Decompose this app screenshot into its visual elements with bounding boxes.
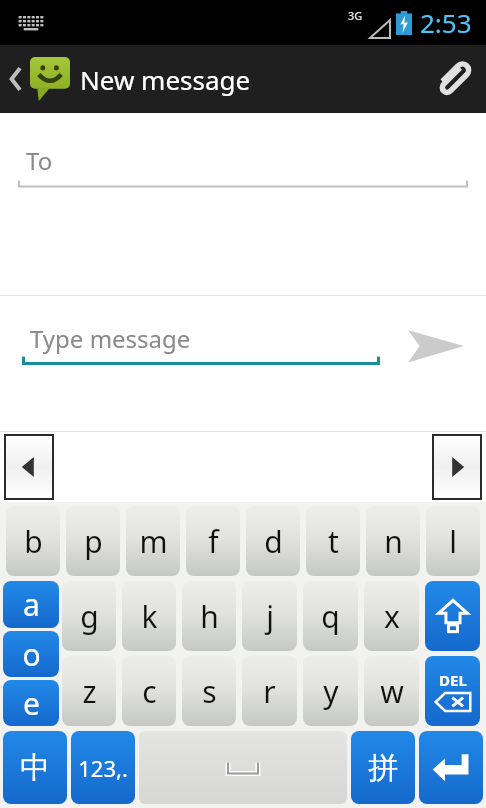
button[interactable]: w xyxy=(364,656,419,726)
button[interactable]: 123,. xyxy=(71,731,135,804)
staticText: m xyxy=(139,521,168,562)
staticText: b xyxy=(24,521,43,562)
staticText: 中 xyxy=(20,749,50,787)
button[interactable]: c xyxy=(122,656,176,726)
button[interactable]: 中 xyxy=(3,731,67,804)
staticText: o xyxy=(22,634,41,675)
staticText: y xyxy=(323,671,339,712)
button[interactable]: x xyxy=(364,581,419,651)
button[interactable]: Delete xyxy=(425,656,480,726)
staticText: g xyxy=(80,596,99,637)
staticText: w xyxy=(380,671,404,712)
button[interactable]: b xyxy=(6,506,60,576)
button[interactable]: z xyxy=(62,656,116,726)
staticText: n xyxy=(384,521,403,562)
button[interactable]: To xyxy=(18,137,468,183)
staticText: z xyxy=(82,671,97,712)
button[interactable]: f xyxy=(186,506,240,576)
button[interactable]: s xyxy=(182,656,236,726)
button[interactable]: Shift xyxy=(425,581,480,651)
staticText: l xyxy=(449,521,457,562)
staticText: c xyxy=(142,671,157,712)
staticText: e xyxy=(23,683,40,724)
staticText: New message xyxy=(80,62,251,97)
button[interactable]: q xyxy=(303,581,358,651)
staticText: x xyxy=(384,596,400,637)
button[interactable]: y xyxy=(303,656,358,726)
button[interactable]: Enter xyxy=(419,731,483,804)
staticText: k xyxy=(141,596,158,637)
staticText: t xyxy=(328,521,339,562)
staticText: r xyxy=(263,671,276,712)
button[interactable]: l xyxy=(426,506,480,576)
button[interactable]: n xyxy=(366,506,420,576)
staticText: 123,. xyxy=(78,753,128,783)
staticText: 3G xyxy=(348,8,363,23)
staticText: f xyxy=(208,521,219,562)
button[interactable]: Next candidates xyxy=(434,436,480,498)
button[interactable]: Type message xyxy=(22,316,386,360)
staticText: 2:53 xyxy=(420,5,472,40)
button[interactable]: 拼 xyxy=(351,731,415,804)
staticText: Type message xyxy=(30,322,191,355)
staticText: 拼 xyxy=(368,749,398,787)
button[interactable]: Space xyxy=(139,731,347,804)
button[interactable]: o xyxy=(3,631,59,677)
staticText: DEL xyxy=(439,670,467,690)
button[interactable]: p xyxy=(66,506,120,576)
button[interactable]: r xyxy=(242,656,297,726)
button[interactable]: k xyxy=(122,581,176,651)
button[interactable]: Attach xyxy=(418,45,486,113)
staticText: j xyxy=(266,596,274,637)
button[interactable]: t xyxy=(306,506,360,576)
staticText: a xyxy=(23,584,40,625)
staticText: d xyxy=(264,521,283,562)
button[interactable]: Previous candidates xyxy=(6,436,52,498)
button[interactable]: e xyxy=(3,680,59,726)
button[interactable]: j xyxy=(242,581,297,651)
staticText: p xyxy=(84,521,103,562)
button[interactable]: h xyxy=(182,581,236,651)
button[interactable]: g xyxy=(62,581,116,651)
staticText: h xyxy=(200,596,219,637)
button[interactable]: a xyxy=(3,581,59,628)
button[interactable]: d xyxy=(246,506,300,576)
staticText: s xyxy=(202,671,217,712)
button[interactable]: Send xyxy=(386,296,486,396)
button[interactable]: New message xyxy=(6,57,251,101)
staticText: To xyxy=(26,144,53,177)
button[interactable]: m xyxy=(126,506,180,576)
staticText: q xyxy=(321,596,340,637)
